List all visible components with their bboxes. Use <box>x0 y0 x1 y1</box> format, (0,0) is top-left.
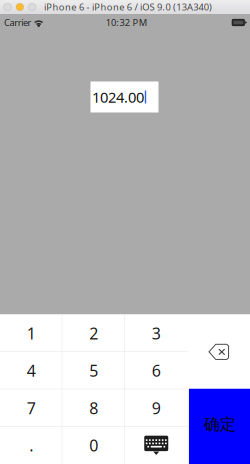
button[interactable]: 0 <box>62 427 125 464</box>
staticText: 3 <box>152 323 161 344</box>
staticText: 1024.00 <box>92 87 144 107</box>
button[interactable]: 确定 <box>189 389 250 464</box>
button[interactable]: Delete <box>187 314 250 389</box>
button[interactable]: 2 <box>62 314 125 352</box>
button[interactable]: 9 <box>125 389 187 427</box>
staticText: . <box>29 435 33 456</box>
staticText: 1 <box>27 323 36 344</box>
staticText: 6 <box>152 360 161 381</box>
button[interactable]: 6 <box>125 352 187 389</box>
button[interactable]: 1 <box>0 314 62 352</box>
button[interactable]: 4 <box>0 352 62 389</box>
staticText: 确定 <box>203 414 235 434</box>
button[interactable]: 3 <box>125 314 187 352</box>
button[interactable]: 5 <box>62 352 125 389</box>
button[interactable]: 7 <box>0 389 62 427</box>
staticText: 8 <box>89 397 98 418</box>
staticText: 0 <box>89 435 98 456</box>
staticText: 10:32 PM <box>106 16 147 29</box>
staticText: 4 <box>27 360 36 381</box>
button[interactable]: . <box>0 427 62 464</box>
staticText: 5 <box>89 360 98 381</box>
button[interactable]: Hide keyboard <box>125 427 187 464</box>
staticText: 2 <box>89 323 98 344</box>
staticText: 9 <box>152 397 161 418</box>
button[interactable]: 8 <box>62 389 125 427</box>
staticText: iPhone 6 - iPhone 6 / iOS 9.0 (13A340) <box>44 1 212 13</box>
staticText: Carrier <box>4 16 31 29</box>
staticText: 7 <box>27 397 36 418</box>
